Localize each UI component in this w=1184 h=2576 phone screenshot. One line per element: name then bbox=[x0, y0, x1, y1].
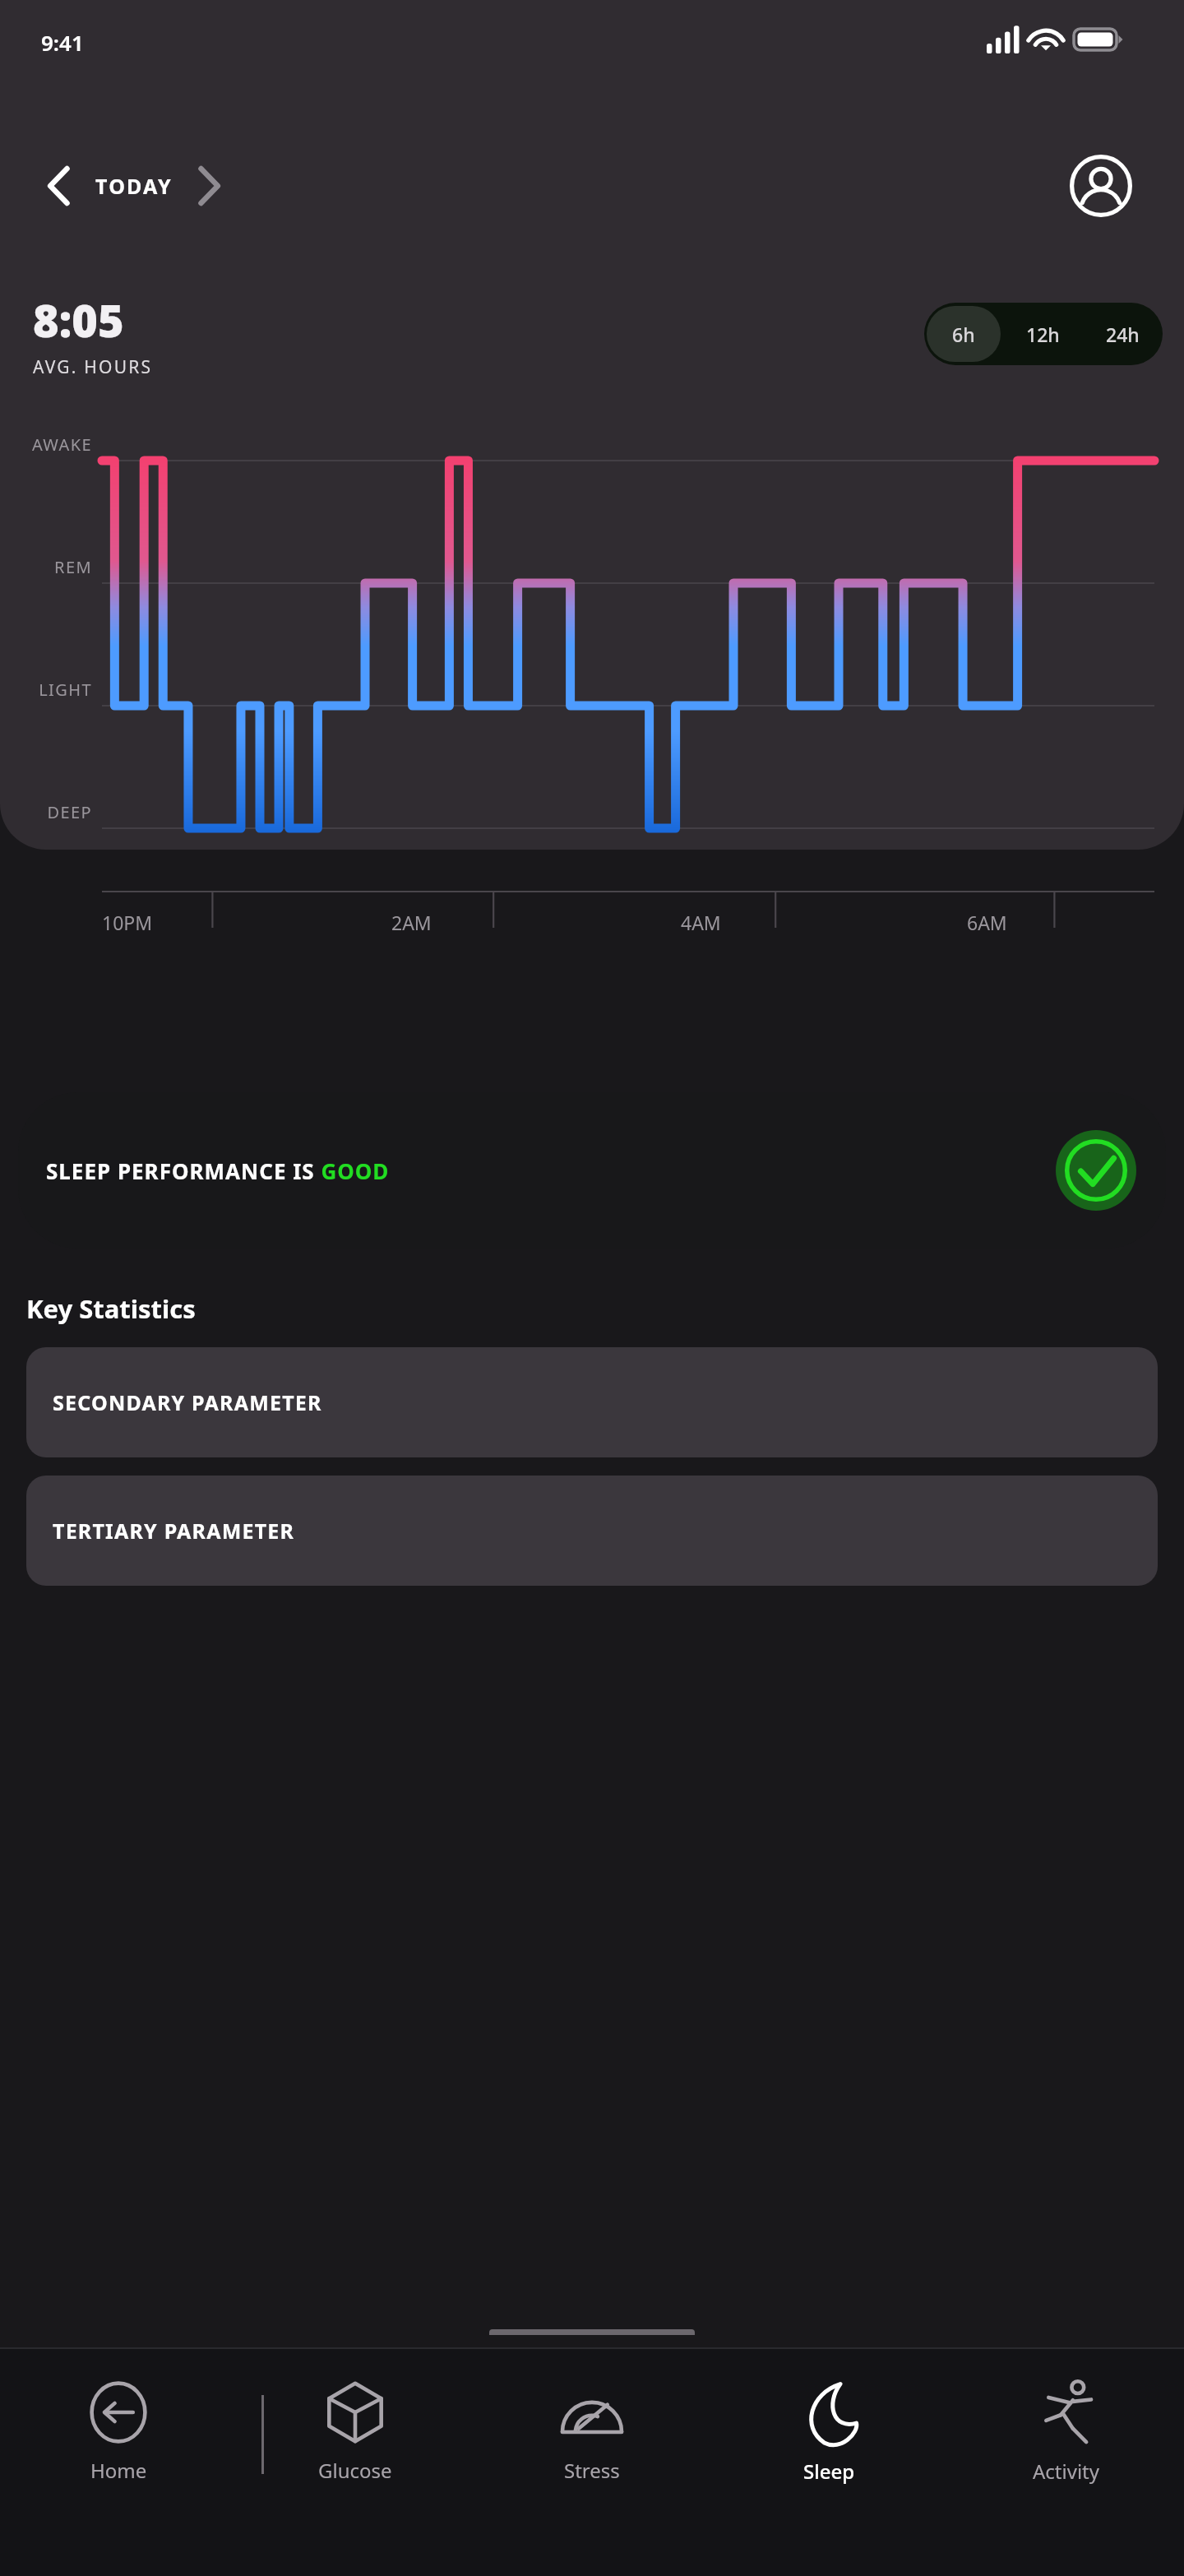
staticText: Sleep bbox=[803, 2458, 855, 2485]
button[interactable]: TERTIARY PARAMETER bbox=[26, 1476, 1158, 1586]
staticText: 10PM bbox=[102, 910, 153, 935]
staticText: SLEEP PERFORMANCE IS GOOD bbox=[46, 1156, 390, 1185]
staticText: 4AM bbox=[681, 910, 721, 935]
button[interactable]: Sleep bbox=[710, 2374, 947, 2490]
button[interactable]: SLEEP PERFORMANCE IS GOOD bbox=[18, 1092, 1166, 1249]
staticText: DEEP bbox=[8, 801, 92, 823]
staticText: Home bbox=[90, 2457, 147, 2484]
staticText: Glucose bbox=[318, 2457, 392, 2484]
staticText: LIGHT bbox=[8, 679, 92, 701]
button[interactable]: Glucose bbox=[237, 2374, 474, 2489]
button[interactable]: Next day bbox=[178, 155, 240, 217]
button[interactable]: 12h bbox=[1006, 306, 1080, 362]
button[interactable]: Activity bbox=[947, 2374, 1184, 2490]
button[interactable]: Home bbox=[0, 2374, 237, 2489]
staticText: Stress bbox=[564, 2457, 620, 2484]
button[interactable]: Stress bbox=[474, 2374, 710, 2489]
staticText: 9:41 bbox=[41, 28, 84, 57]
staticText: REM bbox=[8, 556, 92, 578]
staticText: 24h bbox=[1106, 322, 1140, 347]
staticText: Activity bbox=[1033, 2458, 1099, 2485]
button[interactable]: TODAY bbox=[90, 172, 178, 200]
staticText: Key Statistics bbox=[26, 1291, 196, 1326]
button[interactable]: SECONDARY PARAMETER bbox=[26, 1347, 1158, 1457]
staticText: TERTIARY PARAMETER bbox=[53, 1517, 295, 1545]
button[interactable]: Previous day bbox=[28, 155, 90, 217]
button[interactable]: 24h bbox=[1085, 306, 1160, 362]
staticText: 2AM bbox=[391, 910, 432, 935]
staticText: 6AM bbox=[967, 910, 1007, 935]
staticText: 12h bbox=[1026, 322, 1060, 347]
staticText: 8:05 bbox=[33, 290, 124, 350]
staticText: 6h bbox=[952, 322, 975, 347]
button[interactable]: 6h bbox=[927, 306, 1001, 362]
staticText: AWAKE bbox=[8, 433, 92, 456]
button[interactable]: Profile bbox=[1064, 149, 1138, 223]
staticText: SECONDARY PARAMETER bbox=[53, 1388, 322, 1416]
staticText: AVG. HOURS bbox=[33, 355, 153, 379]
